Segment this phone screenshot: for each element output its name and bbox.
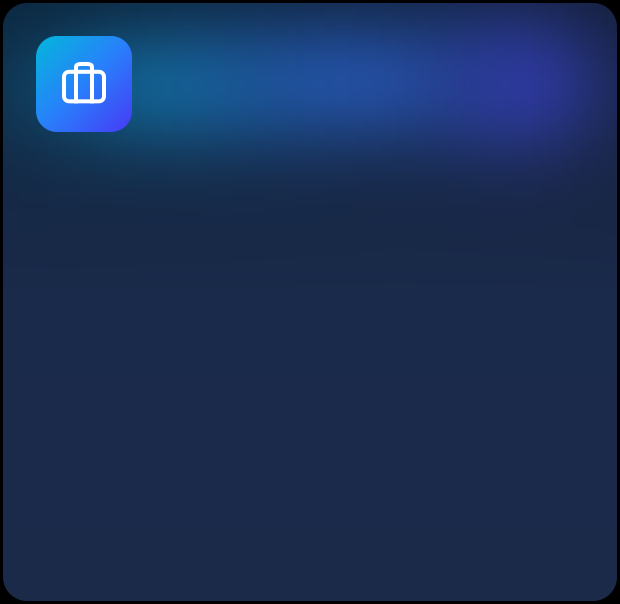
button[interactable]: Briefcase	[36, 36, 132, 132]
